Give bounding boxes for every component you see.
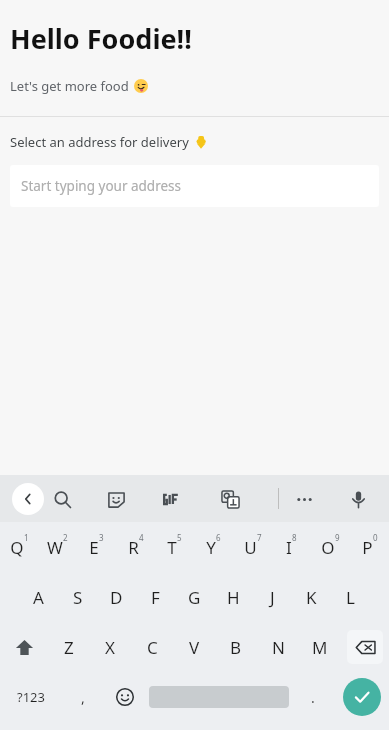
staticText: X	[105, 636, 115, 659]
button[interactable]: P	[350, 522, 389, 572]
staticText: F	[151, 586, 160, 609]
staticText: A	[33, 586, 44, 609]
button[interactable]: Stickers	[100, 483, 132, 515]
staticText: K	[306, 586, 317, 609]
staticText: Let's get more food	[10, 77, 129, 95]
staticText: I	[286, 536, 292, 559]
button[interactable]: N	[257, 622, 299, 672]
staticText: 1	[24, 532, 29, 543]
button[interactable]: X	[89, 622, 131, 672]
staticText: T	[167, 536, 177, 559]
staticText: H	[227, 586, 240, 609]
button[interactable]: More options	[288, 483, 320, 515]
staticText: 6	[216, 532, 221, 543]
button[interactable]: F	[136, 572, 175, 622]
button[interactable]: A	[19, 572, 58, 622]
staticText: V	[189, 636, 200, 659]
button[interactable]: Search	[46, 483, 78, 515]
staticText: Start typing your address	[21, 177, 182, 195]
button[interactable]: O	[311, 522, 350, 572]
staticText: 8	[292, 532, 297, 543]
staticText: 3	[99, 532, 104, 543]
button[interactable]: Q	[0, 522, 38, 572]
button[interactable]: Back	[12, 483, 44, 515]
button[interactable]: ,	[62, 672, 104, 722]
staticText: R	[128, 536, 139, 559]
staticText: S	[73, 586, 83, 609]
staticText: Z	[64, 636, 74, 659]
staticText: ?123	[17, 688, 45, 706]
button[interactable]: E	[77, 522, 116, 572]
button[interactable]: Shift	[0, 622, 48, 672]
button[interactable]: Voice input	[342, 483, 374, 515]
button[interactable]: J	[253, 572, 292, 622]
staticText: U	[244, 536, 257, 559]
button[interactable]: Z	[48, 622, 89, 672]
staticText: E	[89, 536, 99, 559]
button[interactable]: I	[272, 522, 311, 572]
button[interactable]: L	[331, 572, 370, 622]
button[interactable]: M	[299, 622, 341, 672]
staticText: M	[312, 636, 328, 659]
staticText: W	[47, 536, 63, 559]
staticText: 0	[373, 532, 378, 543]
button[interactable]: Enter	[334, 672, 389, 722]
button[interactable]: V	[173, 622, 215, 672]
staticText: Select an address for delivery	[10, 133, 189, 151]
staticText: Hello Foodie!!	[10, 20, 192, 57]
button[interactable]: Emoji	[104, 672, 146, 722]
staticText: N	[272, 636, 285, 659]
button[interactable]: R	[116, 522, 155, 572]
button[interactable]: Backspace	[341, 622, 389, 672]
staticText: J	[270, 586, 275, 609]
staticText: C	[147, 636, 158, 659]
staticText: D	[110, 586, 123, 609]
button[interactable]: GIF	[156, 483, 188, 515]
staticText: 5	[177, 532, 182, 543]
button[interactable]: U	[233, 522, 272, 572]
button[interactable]: S	[58, 572, 97, 622]
staticText: Q	[10, 536, 24, 559]
staticText: 4	[139, 532, 144, 543]
button[interactable]: C	[131, 622, 173, 672]
button[interactable]: B	[215, 622, 257, 672]
staticText: 2	[63, 532, 68, 543]
staticText: O	[321, 536, 335, 559]
button[interactable]: W	[38, 522, 77, 572]
button[interactable]: G	[175, 572, 214, 622]
staticText: P	[362, 536, 373, 559]
staticText: G	[188, 586, 201, 609]
button[interactable]: H	[214, 572, 253, 622]
staticText: 9	[335, 532, 340, 543]
button[interactable]: .	[292, 672, 334, 722]
button[interactable]: T	[155, 522, 194, 572]
button[interactable]: D	[97, 572, 136, 622]
button[interactable]: Y	[194, 522, 233, 572]
staticText: Y	[206, 536, 216, 559]
button[interactable]: ?123	[0, 672, 62, 722]
staticText: ,	[81, 688, 85, 707]
button[interactable]: K	[292, 572, 331, 622]
staticText: B	[230, 636, 242, 659]
staticText: 7	[257, 532, 262, 543]
staticText: L	[346, 586, 355, 609]
staticText: .	[311, 688, 315, 707]
button[interactable]: Translate	[214, 483, 246, 515]
button[interactable]: Start typing your address	[10, 165, 379, 207]
